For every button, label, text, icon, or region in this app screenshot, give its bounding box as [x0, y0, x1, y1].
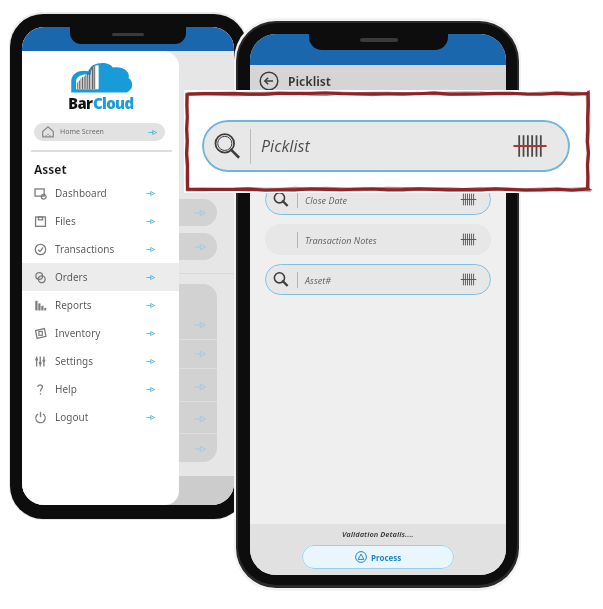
button[interactable]: Settings: [22, 347, 179, 375]
button[interactable]: Orders: [22, 263, 179, 291]
staticText: Asset: [34, 161, 67, 177]
staticText: Picklist: [288, 73, 332, 89]
staticText: Bar: [68, 93, 93, 113]
staticText: Dashboard: [55, 186, 107, 200]
staticText: Inventory: [55, 326, 101, 340]
staticText: Files: [55, 214, 76, 228]
button[interactable]: Picklist: [202, 120, 570, 172]
button[interactable]: Files: [22, 207, 179, 235]
button[interactable]: Dashboard: [22, 179, 179, 207]
button[interactable]: Inventory: [22, 319, 179, 347]
button[interactable]: Asset#: [265, 264, 491, 295]
staticText: Settings: [55, 354, 94, 368]
staticText: Home Screen: [60, 127, 104, 137]
staticText: Asset#: [305, 274, 332, 286]
staticText: Reports: [55, 298, 92, 312]
button[interactable]: Back: [259, 71, 279, 91]
button[interactable]: Process: [302, 545, 454, 569]
staticText: Orders: [55, 270, 88, 284]
button[interactable]: Reports: [22, 291, 179, 319]
button[interactable]: Help: [22, 375, 179, 403]
staticText: Picklist: [261, 135, 310, 157]
staticText: Help: [55, 382, 77, 396]
button[interactable]: Transactions: [22, 235, 179, 263]
button[interactable]: Close Date: [265, 184, 491, 215]
button[interactable]: Logout: [22, 403, 179, 431]
staticText: Cloud: [93, 93, 134, 113]
staticText: Transactions: [55, 242, 115, 256]
staticText: Transaction Notes: [305, 234, 377, 246]
button[interactable]: Home Screen: [34, 123, 165, 141]
staticText: Process: [371, 552, 402, 563]
staticText: Logout: [55, 410, 89, 424]
staticText: Close Date: [305, 194, 347, 206]
button[interactable]: Picklist: [265, 144, 491, 175]
staticText: Validation Details....: [342, 529, 414, 539]
button[interactable]: Transaction Notes: [265, 224, 491, 255]
